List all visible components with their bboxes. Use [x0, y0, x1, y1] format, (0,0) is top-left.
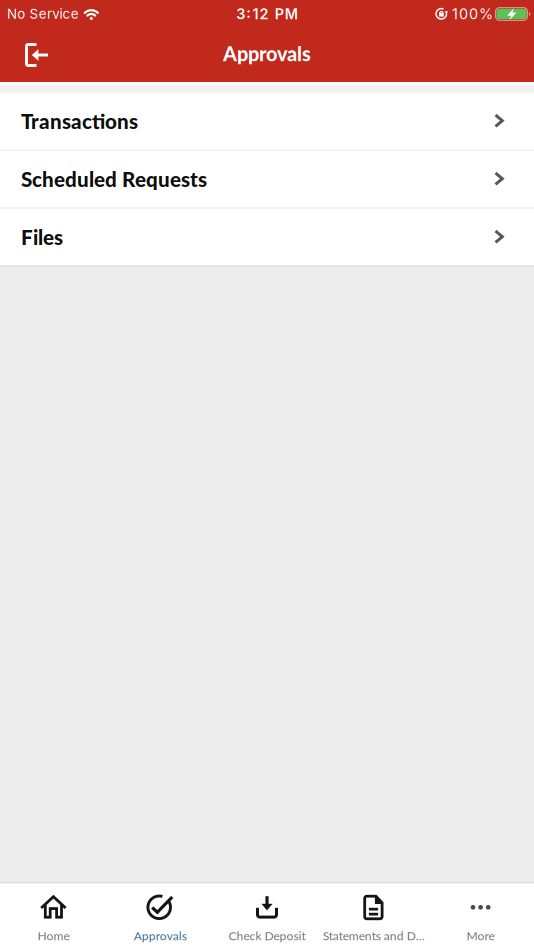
- button[interactable]: Transactions: [0, 93, 534, 149]
- staticText: No Service: [7, 6, 79, 22]
- staticText: Check Deposit: [228, 928, 305, 943]
- button[interactable]: Scheduled Requests: [0, 151, 534, 207]
- staticText: Approvals: [223, 42, 311, 65]
- staticText: Statements and D…: [323, 928, 425, 943]
- staticText: Files: [21, 225, 63, 249]
- button[interactable]: Check Deposit: [214, 883, 320, 943]
- staticText: 100%: [452, 5, 493, 23]
- button[interactable]: Home: [0, 883, 107, 943]
- button[interactable]: Statements and D…: [320, 883, 427, 943]
- button[interactable]: Log out: [0, 43, 49, 67]
- staticText: Home: [37, 928, 69, 943]
- button[interactable]: Approvals: [107, 883, 214, 943]
- staticText: Approvals: [134, 928, 187, 943]
- button[interactable]: More: [427, 883, 534, 943]
- staticText: Transactions: [21, 109, 138, 133]
- staticText: More: [467, 928, 495, 943]
- button[interactable]: Files: [0, 209, 534, 265]
- staticText: 3:12 PM: [236, 5, 298, 23]
- staticText: Scheduled Requests: [21, 167, 207, 191]
